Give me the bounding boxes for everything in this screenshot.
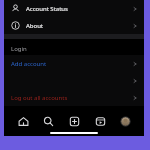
button[interactable]: Home bbox=[12, 112, 34, 130]
button[interactable]: Log out all accounts bbox=[4, 89, 144, 106]
button[interactable]: Search bbox=[37, 112, 59, 130]
staticText: Add account bbox=[11, 60, 47, 68]
staticText: About bbox=[26, 22, 44, 30]
staticText: Log out all accounts bbox=[11, 94, 68, 102]
button[interactable]: Reels bbox=[89, 112, 111, 130]
staticText: Login bbox=[11, 45, 27, 53]
button[interactable]: Profile bbox=[114, 112, 136, 130]
button[interactable]: Add account bbox=[4, 55, 144, 72]
button[interactable]: Create bbox=[63, 112, 85, 130]
button[interactable]: Account Status bbox=[4, 0, 144, 17]
button[interactable]: About bbox=[4, 17, 144, 34]
staticText: Account Status bbox=[26, 5, 68, 13]
